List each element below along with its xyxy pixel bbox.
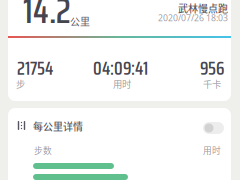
staticText: 04:09:41 (93, 52, 148, 83)
staticText: 千卡 (203, 77, 221, 90)
staticText: 956 (200, 52, 224, 83)
staticText: 步 (16, 77, 25, 90)
staticText: 步数 (34, 144, 52, 156)
staticText: 14.2 (23, 0, 71, 40)
staticText: 2020/07/26 18:03 (158, 12, 228, 24)
staticText: 用时 (203, 144, 221, 156)
button[interactable]: Toggle per-kilometre details (203, 122, 224, 134)
staticText: 公里 (70, 14, 90, 28)
staticText: 每公里详情 (33, 119, 83, 133)
staticText: 武林慢点跑 (178, 1, 228, 15)
staticText: 用时 (113, 77, 131, 90)
staticText: 21754 (17, 52, 53, 83)
